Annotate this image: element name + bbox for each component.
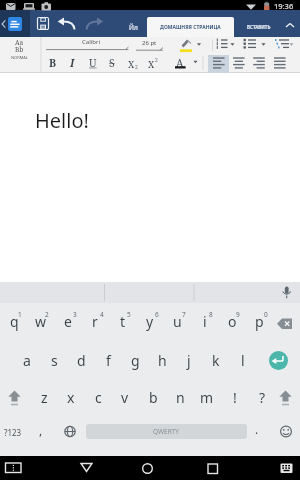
button[interactable]: Calibri [66, 37, 116, 47]
staticText: ДОМАШНЯЯ СТРАНИЦА [160, 24, 221, 31]
button[interactable]: e [55, 311, 81, 331]
staticText: 19:36 [274, 1, 294, 11]
staticText: 8 [209, 310, 213, 319]
staticText: j [187, 351, 191, 370]
staticText: 1 [18, 310, 22, 319]
staticText: Calibri [82, 38, 100, 46]
button[interactable] [269, 351, 288, 370]
button[interactable]: s [41, 350, 67, 370]
staticText: d [77, 351, 86, 370]
staticText: l [241, 351, 245, 370]
button[interactable]: S [92, 53, 132, 73]
button[interactable]: m [194, 387, 220, 407]
button[interactable]: n [167, 387, 193, 407]
button[interactable]: . [237, 419, 277, 439]
button[interactable]: QWERTY [86, 424, 247, 439]
staticText: w [35, 312, 47, 331]
button[interactable] [208, 55, 229, 73]
staticText: s [51, 351, 58, 370]
staticText: NORMAL [11, 55, 28, 60]
staticText: 9 [236, 310, 240, 319]
staticText: U [89, 56, 97, 70]
button[interactable]: i [192, 311, 218, 331]
staticText: B [49, 56, 57, 70]
button[interactable]: f [95, 350, 121, 370]
button[interactable]: B [33, 53, 73, 73]
staticText: x [67, 388, 75, 407]
staticText: f [106, 351, 111, 370]
staticText: 2 [155, 57, 158, 64]
button[interactable] [0, 10, 30, 37]
button[interactable]: a [14, 350, 40, 370]
staticText: . [255, 421, 259, 437]
button[interactable]: ВСТАВИТЬ [237, 17, 281, 37]
button[interactable]: z [31, 387, 57, 407]
button[interactable]: w [28, 311, 54, 331]
staticText: n [176, 388, 185, 407]
button[interactable]: c [85, 387, 111, 407]
staticText: I [70, 56, 75, 70]
button[interactable]: v [112, 387, 138, 407]
staticText: g [131, 351, 140, 370]
staticText: Aa [15, 38, 24, 47]
button[interactable]: p [246, 311, 272, 331]
staticText: ? [259, 388, 266, 407]
button[interactable]: k [203, 350, 229, 370]
staticText: ?123 [4, 427, 22, 438]
button[interactable]: x [58, 387, 84, 407]
staticText: m [200, 388, 214, 407]
button[interactable]: A [160, 53, 200, 73]
button[interactable]: X [131, 54, 171, 74]
button[interactable]: r [82, 311, 108, 331]
button[interactable]: ! [222, 387, 248, 407]
staticText: S [109, 56, 115, 70]
button[interactable]: 26 pt [129, 38, 169, 48]
staticText: o [228, 312, 237, 331]
button[interactable]: t [110, 311, 136, 331]
staticText: p [255, 312, 264, 331]
button[interactable]: ? [249, 387, 275, 407]
staticText: t [120, 312, 126, 331]
staticText: ! [233, 388, 237, 407]
button[interactable]: h [149, 350, 175, 370]
button[interactable]: d [68, 350, 94, 370]
staticText: 2 [135, 64, 138, 71]
button[interactable] [8, 17, 22, 31]
button[interactable]: g [122, 350, 148, 370]
button[interactable]: u [164, 311, 190, 331]
staticText: 3 [73, 310, 77, 319]
staticText: i [203, 312, 207, 331]
staticText: A [176, 56, 184, 70]
button[interactable]: ?123 [1, 422, 25, 442]
staticText: q [10, 312, 19, 331]
button[interactable]: q [1, 311, 27, 331]
staticText: e [64, 312, 72, 331]
staticText: z [41, 388, 48, 407]
button[interactable]: I [52, 53, 92, 73]
staticText: u [173, 312, 182, 331]
staticText: Bb [15, 45, 24, 54]
staticText: b [149, 388, 158, 407]
button[interactable]: y [137, 311, 163, 331]
staticText: QWERTY [153, 427, 180, 436]
staticText: 2 [45, 310, 49, 319]
staticText: 5 [127, 310, 131, 319]
button[interactable]: ДОМАШНЯЯ СТРАНИЦА [147, 17, 234, 37]
button[interactable]: b [140, 387, 166, 407]
staticText: Hello! [35, 107, 89, 133]
staticText: c [95, 388, 102, 407]
staticText: , [39, 422, 43, 438]
staticText: ВСТАВИТЬ [247, 24, 271, 30]
button[interactable]: j [176, 350, 202, 370]
staticText: y [146, 312, 154, 331]
button[interactable]: U [73, 53, 113, 73]
button[interactable]: X [111, 54, 151, 74]
button[interactable]: , [21, 420, 61, 440]
staticText: k [212, 351, 220, 370]
button[interactable]: o [219, 311, 245, 331]
staticText: 4 [100, 310, 104, 319]
button[interactable]: l [230, 350, 256, 370]
staticText: r [92, 312, 98, 331]
staticText: 0 [264, 310, 268, 319]
staticText: 7 [182, 310, 186, 319]
